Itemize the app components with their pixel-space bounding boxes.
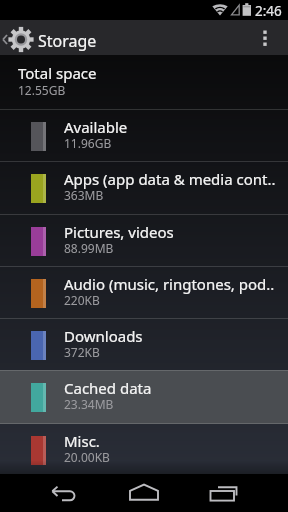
staticText: 2:46 bbox=[255, 2, 282, 20]
button[interactable]: Total space bbox=[0, 55, 288, 109]
button[interactable]: Cached data bbox=[0, 370, 288, 424]
button[interactable] bbox=[252, 20, 288, 55]
staticText: Apps (app data & media cont.. bbox=[64, 169, 276, 189]
staticText: 220KB bbox=[64, 292, 100, 308]
staticText: 88.99MB bbox=[64, 240, 114, 256]
button[interactable]: Audio (music, ringtones, pod.. bbox=[0, 266, 288, 318]
button[interactable]: Available bbox=[0, 109, 288, 162]
button[interactable]: Downloads bbox=[0, 318, 288, 370]
staticText: 11.96GB bbox=[64, 135, 112, 151]
staticText: Pictures, videos bbox=[64, 222, 174, 242]
staticText: 23.34MB bbox=[64, 396, 114, 412]
button[interactable]: Misc. bbox=[0, 423, 288, 474]
staticText: Total space bbox=[18, 63, 97, 83]
staticText: Available bbox=[64, 117, 128, 137]
button[interactable] bbox=[200, 474, 244, 512]
button[interactable]: Pictures, videos bbox=[0, 214, 288, 267]
button[interactable]: Storage bbox=[0, 20, 288, 55]
staticText: 20.00KB bbox=[64, 449, 110, 465]
staticText: 363MB bbox=[64, 187, 104, 203]
staticText: Misc. bbox=[64, 431, 100, 451]
staticText: Downloads bbox=[64, 326, 143, 346]
button[interactable] bbox=[44, 474, 88, 512]
button[interactable]: Apps (app data & media cont.. bbox=[0, 161, 288, 214]
staticText: 12.55GB bbox=[18, 82, 66, 98]
staticText: Storage bbox=[38, 30, 97, 52]
staticText: Audio (music, ringtones, pod.. bbox=[64, 274, 275, 294]
staticText: Cached data bbox=[64, 378, 152, 398]
staticText: 372KB bbox=[64, 344, 100, 360]
button[interactable] bbox=[122, 474, 166, 512]
